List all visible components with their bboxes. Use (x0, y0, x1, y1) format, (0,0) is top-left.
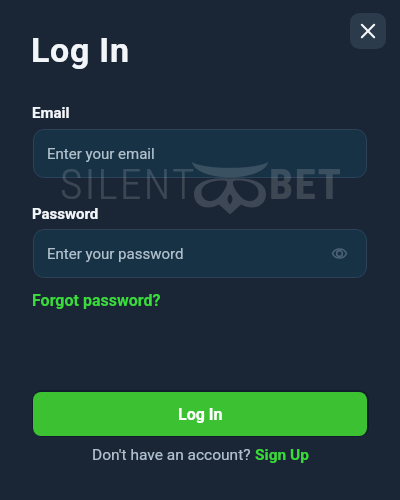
staticText: Password (32, 205, 99, 223)
staticText: Log In (31, 30, 130, 70)
staticText: Don't have an account? (92, 446, 255, 464)
staticText: Enter your password (47, 245, 184, 263)
staticText: Email (32, 104, 70, 122)
button[interactable]: Enter your email (33, 129, 367, 178)
staticText: Enter your email (47, 145, 155, 163)
staticText: SILENT (60, 159, 197, 209)
staticText: Log In (178, 405, 223, 424)
other: Show password (332, 246, 347, 261)
staticText: BET (269, 159, 343, 209)
button[interactable]: Sign Up (255, 446, 309, 464)
staticText: Sign Up (255, 446, 309, 464)
button[interactable]: Close (350, 13, 386, 49)
staticText: Forgot password? (32, 291, 161, 310)
button[interactable]: Enter your password (33, 229, 367, 278)
button[interactable]: Log In (33, 392, 367, 436)
button[interactable]: Forgot password? (32, 291, 161, 310)
